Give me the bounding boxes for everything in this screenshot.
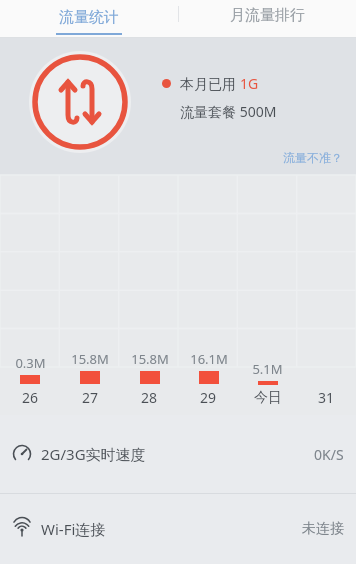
staticText: 流量套餐 500M	[180, 102, 277, 121]
staticText: 31	[318, 388, 335, 407]
button[interactable]: 月流量排行	[178, 0, 356, 38]
staticText: 2G/3G实时速度	[41, 444, 146, 464]
staticText: Wi-Fi连接	[41, 519, 106, 539]
staticText: 本月已用	[180, 74, 240, 93]
button[interactable]: 流量统计	[0, 0, 178, 38]
staticText: 今日	[254, 389, 282, 407]
button[interactable]: 2G/3G实时速度	[0, 415, 356, 493]
staticText: 未连接	[302, 520, 344, 538]
staticText: 16.1M	[190, 350, 228, 368]
staticText: 月流量排行	[230, 6, 305, 25]
staticText: 流量统计	[59, 8, 119, 27]
staticText: 28	[141, 388, 158, 407]
staticText: 26	[22, 388, 39, 407]
button[interactable]: Wi-Fi连接	[0, 494, 356, 564]
staticText: 15.8M	[71, 350, 109, 368]
staticText: 0.3M	[15, 354, 46, 372]
staticText: 1G	[240, 74, 259, 93]
staticText: 5.1M	[252, 360, 283, 378]
staticText: 27	[82, 388, 99, 407]
staticText: 0K/S	[314, 445, 344, 464]
staticText: 流量不准？	[283, 150, 343, 165]
button[interactable]: 流量不准？	[280, 147, 346, 168]
staticText: 29	[200, 388, 217, 407]
staticText: 15.8M	[131, 350, 169, 368]
